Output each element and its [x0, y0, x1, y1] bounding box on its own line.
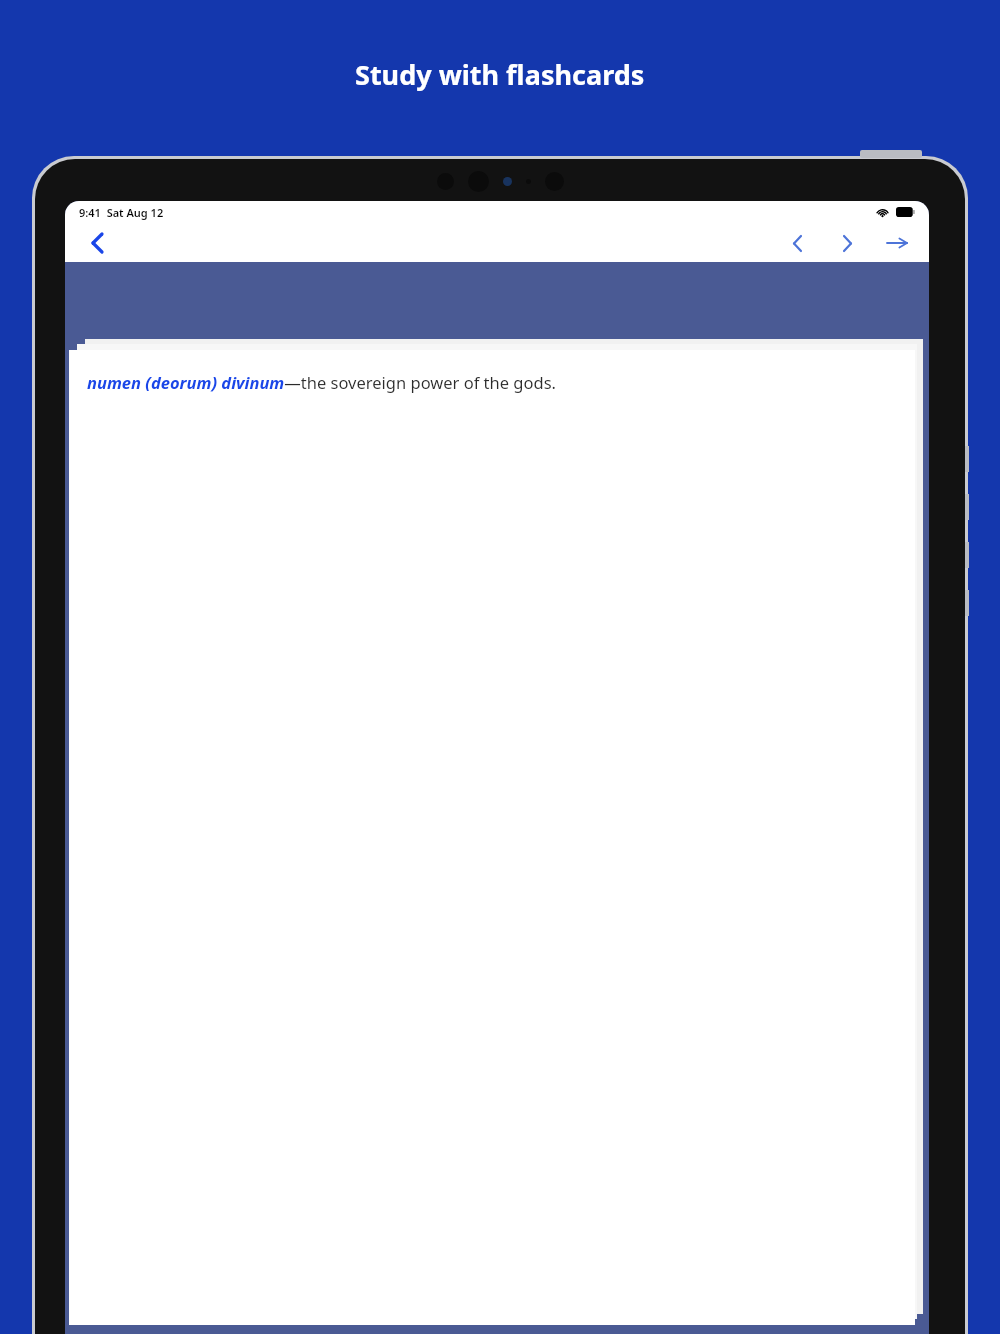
button[interactable]: Back [79, 225, 115, 261]
button[interactable]: Previous card [779, 225, 815, 261]
button[interactable]: Forward [879, 225, 915, 261]
staticText: 9:41 Sat Aug 12 [79, 205, 164, 220]
button[interactable]: Next card [829, 225, 865, 261]
staticText: numen (deorum) divinum—the sovereign pow… [87, 371, 556, 393]
button[interactable]: numen (deorum) divinum—the sovereign pow… [69, 350, 915, 1325]
staticText: Study with flashcards [355, 56, 645, 93]
